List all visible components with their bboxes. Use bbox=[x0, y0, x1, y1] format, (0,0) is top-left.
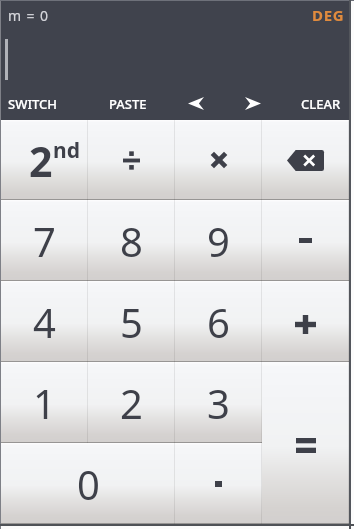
button[interactable]: Move cursor left bbox=[166, 87, 225, 120]
button[interactable]: Multiply bbox=[175, 120, 262, 200]
staticText: 6 bbox=[207, 295, 230, 349]
staticText: SWITCH bbox=[8, 95, 58, 113]
button[interactable]: 2nd function bbox=[1, 120, 88, 200]
staticText: 7 bbox=[33, 214, 56, 268]
staticText: DEG bbox=[312, 5, 345, 25]
button[interactable]: SWITCH bbox=[1, 87, 101, 120]
button[interactable]: 9 bbox=[175, 200, 262, 281]
button[interactable]: Plus bbox=[262, 281, 349, 362]
staticText: CLEAR bbox=[301, 95, 341, 113]
staticText: m = 0 bbox=[8, 6, 49, 25]
button[interactable]: 2 bbox=[88, 362, 175, 443]
staticText: 2 bbox=[29, 133, 53, 177]
button[interactable]: 4 bbox=[1, 281, 88, 362]
button[interactable]: Equals bbox=[262, 362, 349, 524]
button[interactable]: Divide bbox=[88, 120, 175, 200]
button[interactable]: 0 bbox=[1, 443, 175, 524]
button[interactable]: Move cursor right bbox=[225, 87, 280, 120]
button[interactable]: 7 bbox=[1, 200, 88, 281]
button[interactable]: Backspace bbox=[262, 120, 349, 200]
staticText: 1 bbox=[33, 376, 56, 430]
button[interactable]: 1 bbox=[1, 362, 88, 443]
staticText: PASTE bbox=[109, 95, 147, 113]
staticText: 3 bbox=[207, 376, 230, 430]
button[interactable]: PASTE bbox=[101, 87, 166, 120]
staticText: 2 bbox=[120, 376, 143, 430]
staticText: 0 bbox=[77, 457, 100, 511]
button[interactable]: CLEAR bbox=[280, 87, 349, 120]
button[interactable]: 5 bbox=[88, 281, 175, 362]
button[interactable]: 6 bbox=[175, 281, 262, 362]
button[interactable]: 8 bbox=[88, 200, 175, 281]
button[interactable]: Minus bbox=[262, 200, 349, 281]
button[interactable]: 3 bbox=[175, 362, 262, 443]
staticText: 8 bbox=[120, 214, 143, 268]
staticText: 4 bbox=[33, 295, 56, 349]
staticText: 9 bbox=[207, 214, 230, 268]
staticText: 5 bbox=[120, 295, 143, 349]
staticText: nd bbox=[53, 136, 80, 165]
button[interactable]: Decimal point bbox=[175, 443, 262, 524]
